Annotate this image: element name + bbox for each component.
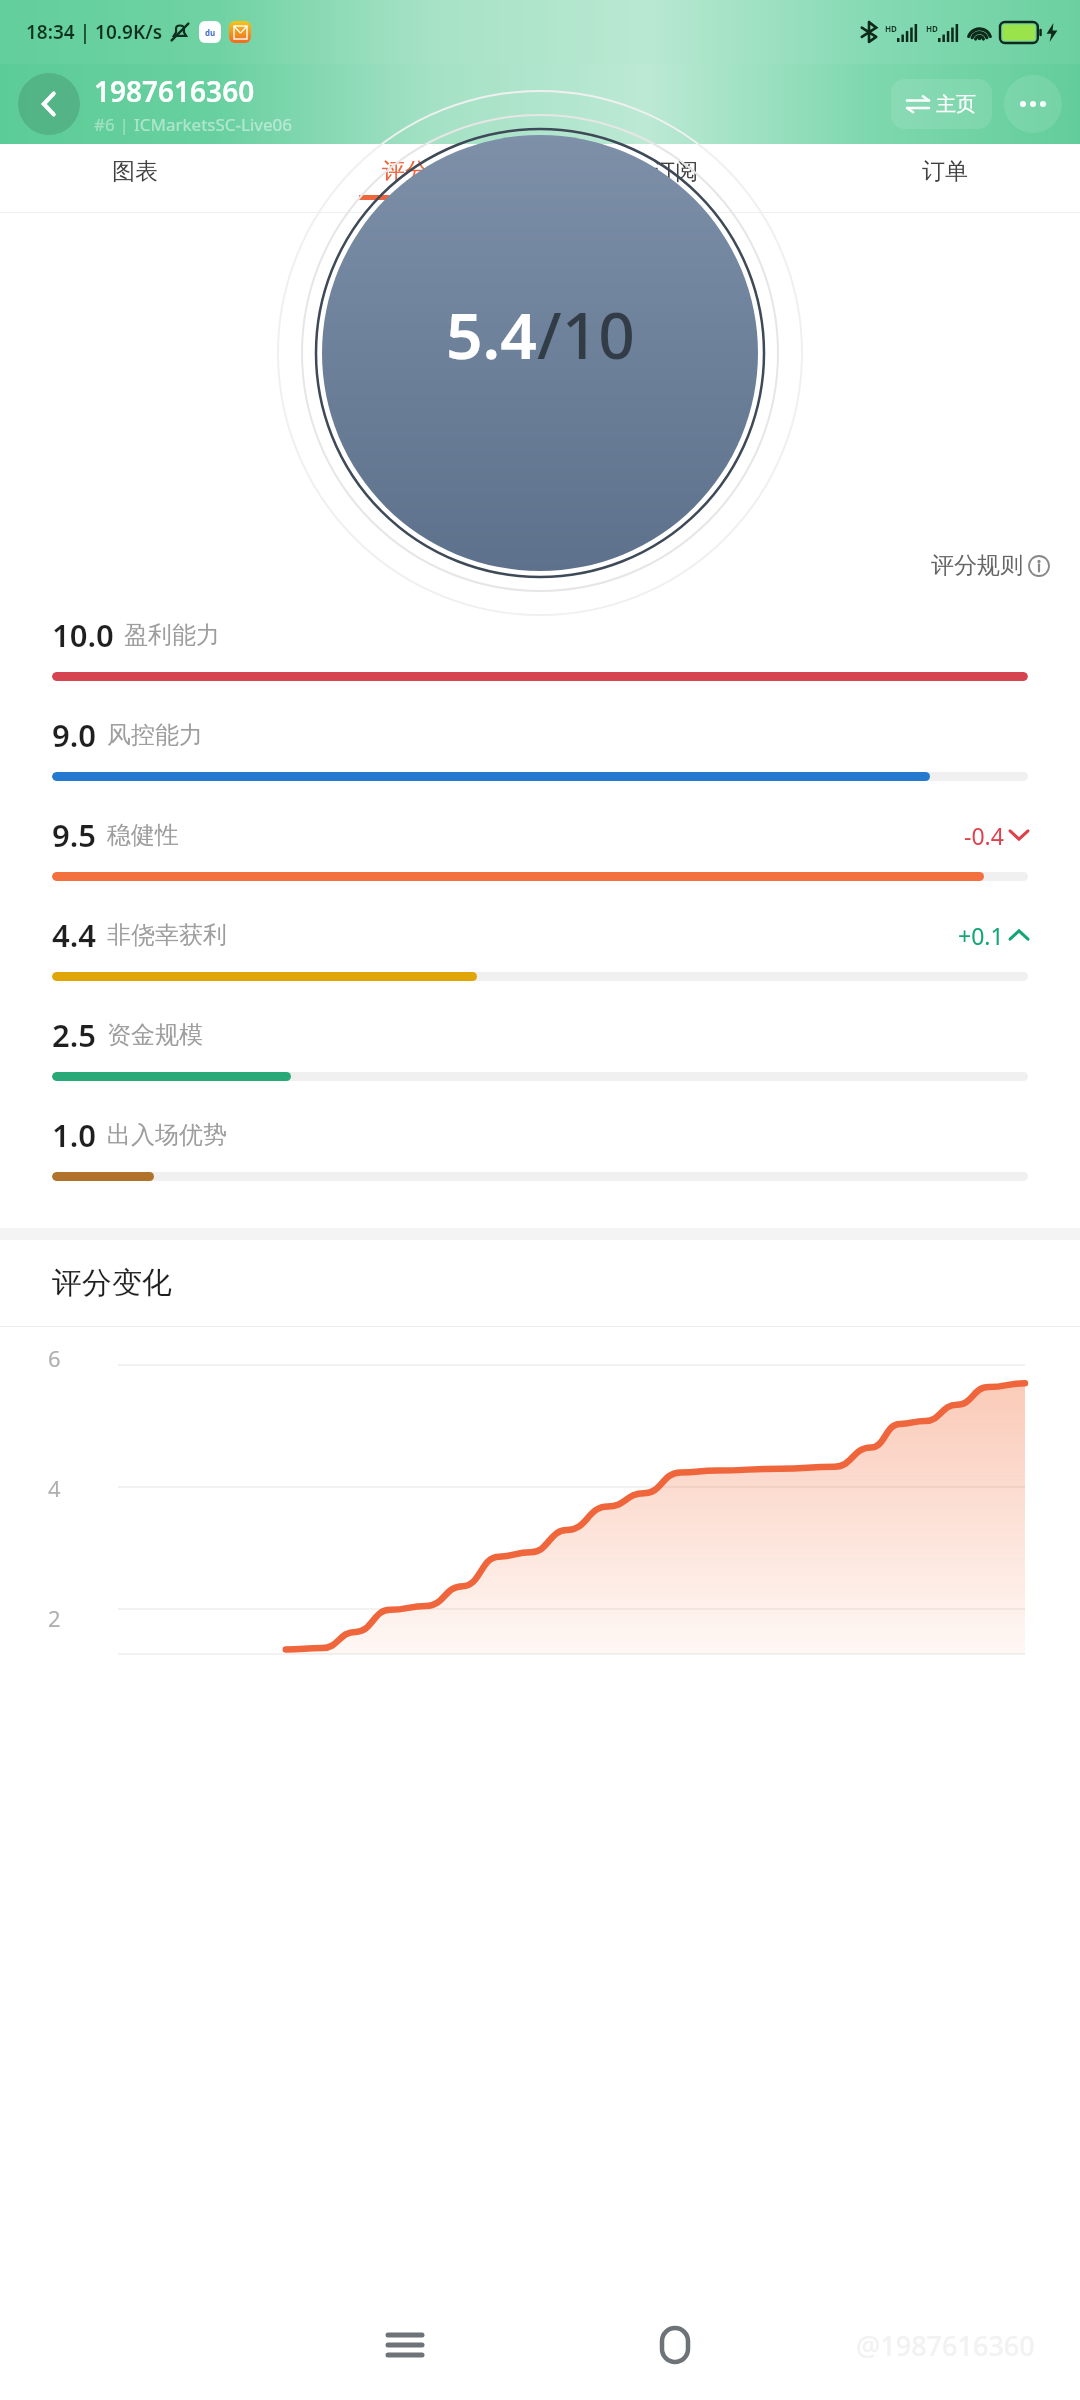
- staticText: 稳健性: [107, 820, 179, 850]
- staticText: ICMarketsSC-Live06: [134, 113, 292, 136]
- staticText: 评分规则: [931, 551, 1023, 580]
- staticText: 18:34 | 10.9K/s: [26, 19, 163, 45]
- staticText: 1.0: [52, 1114, 97, 1156]
- staticText: 订阅: [652, 157, 698, 186]
- staticText: 6: [48, 1343, 61, 1373]
- button[interactable]: 评分: [270, 144, 540, 212]
- button[interactable]: 4.4: [0, 914, 1080, 1014]
- staticText: |: [115, 113, 134, 136]
- button[interactable]: 评分规则: [923, 543, 1058, 588]
- staticText: 订单: [922, 157, 968, 186]
- button[interactable]: Home: [540, 2290, 810, 2400]
- staticText: 5.4: [446, 291, 537, 378]
- staticText: 10.0: [52, 614, 114, 656]
- button[interactable]: Recents: [270, 2290, 540, 2400]
- button[interactable]: 订单: [810, 144, 1080, 212]
- staticText: 9.5: [52, 814, 97, 856]
- staticText: 出入场优势: [107, 1120, 227, 1150]
- staticText: 主页: [936, 92, 976, 117]
- staticText: 评分: [382, 157, 428, 186]
- staticText: /10: [537, 291, 635, 378]
- staticText: 资金规模: [107, 1020, 203, 1050]
- staticText: 9.0: [52, 714, 97, 756]
- button[interactable]: 图表: [0, 144, 270, 212]
- staticText: 4: [48, 1473, 61, 1503]
- staticText: 评分变化: [52, 1264, 172, 1302]
- staticText: 2.5: [52, 1014, 97, 1056]
- staticText: 1987616360: [94, 72, 255, 110]
- staticText: 4.4: [52, 914, 97, 956]
- staticText: +0.1: [958, 920, 1004, 951]
- staticText: 盈利能力: [124, 620, 220, 650]
- button[interactable]: Back: [18, 73, 80, 135]
- button[interactable]: 订阅: [540, 144, 810, 212]
- button[interactable]: 2.5: [0, 1014, 1080, 1114]
- button[interactable]: 9.5: [0, 814, 1080, 914]
- staticText: HD: [926, 23, 938, 34]
- staticText: @1987616360: [856, 2327, 1035, 2364]
- staticText: 2: [48, 1603, 61, 1633]
- button[interactable]: 1.0: [0, 1114, 1080, 1214]
- staticText: 风控能力: [107, 720, 203, 750]
- button[interactable]: 主页: [891, 79, 992, 129]
- button[interactable]: More options: [1004, 75, 1062, 133]
- button[interactable]: 10.0: [0, 614, 1080, 714]
- staticText: HD: [885, 23, 897, 34]
- staticText: du: [205, 27, 216, 38]
- button[interactable]: 9.0: [0, 714, 1080, 814]
- staticText: #6: [94, 113, 115, 136]
- staticText: 非侥幸获利: [107, 920, 227, 950]
- staticText: -0.4: [964, 820, 1004, 851]
- staticText: 图表: [112, 157, 158, 186]
